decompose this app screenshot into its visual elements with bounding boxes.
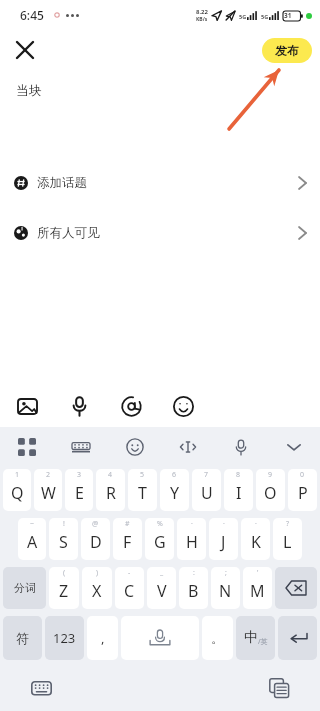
staticText: 5G — [261, 13, 269, 20]
staticText: R — [106, 482, 116, 504]
staticText: : — [193, 568, 195, 578]
staticText: T — [138, 482, 147, 504]
staticText: 8 — [236, 470, 241, 480]
button[interactable]: 添加话题 — [0, 171, 320, 195]
button[interactable]: 4 — [96, 469, 125, 511]
button[interactable]: Backspace — [275, 567, 317, 609]
staticText: 0 — [300, 470, 305, 480]
staticText: X — [92, 580, 102, 602]
button[interactable]: Hide keyboard — [267, 427, 320, 467]
button[interactable]: ’ — [243, 567, 272, 609]
button[interactable]: Close — [8, 33, 42, 67]
staticText: ! — [63, 519, 65, 529]
staticText: · — [191, 519, 193, 529]
button[interactable]: Emoji — [108, 427, 161, 467]
staticText: U — [201, 482, 213, 504]
button[interactable]: ! — [49, 518, 78, 560]
staticText: ’ — [257, 568, 259, 578]
button[interactable]: 8 — [224, 469, 253, 511]
staticText: 当块 — [16, 82, 42, 98]
staticText: · — [223, 519, 225, 529]
staticText: KB/s — [196, 16, 208, 23]
button[interactable]: ( — [49, 567, 79, 609]
button[interactable]: · — [209, 518, 238, 560]
staticText: M — [250, 580, 265, 602]
staticText: 5G — [239, 13, 247, 20]
button[interactable]: Voice — [62, 389, 96, 423]
staticText: H — [186, 531, 198, 553]
staticText: /英 — [258, 637, 268, 647]
button[interactable]: Add image — [10, 389, 44, 423]
staticText: 分词 — [14, 581, 36, 595]
button[interactable]: 。 — [202, 616, 233, 660]
button[interactable]: 2 — [34, 469, 62, 511]
button[interactable]: Text edit — [161, 427, 214, 467]
button[interactable]: 符 — [3, 616, 42, 660]
button[interactable]: 0 — [288, 469, 317, 511]
button[interactable]: 7 — [192, 469, 221, 511]
button[interactable]: 3 — [65, 469, 93, 511]
button[interactable]: 分词 — [3, 567, 46, 609]
button[interactable]: ~ — [18, 518, 46, 560]
staticText: 。 — [211, 630, 224, 646]
staticText: F — [123, 531, 132, 553]
button[interactable]: # — [113, 518, 142, 560]
staticText: 6 — [172, 470, 177, 480]
button[interactable]: - — [115, 567, 144, 609]
staticText: 7 — [204, 470, 209, 480]
staticText: 6:45 — [20, 7, 44, 23]
button[interactable]: @ — [81, 518, 110, 560]
button[interactable]: 所有人可见 — [0, 221, 320, 245]
button[interactable]: ; — [211, 567, 240, 609]
staticText: 2 — [46, 470, 51, 480]
staticText: 中 — [244, 629, 258, 647]
staticText: _ — [160, 568, 164, 578]
button[interactable]: Space — [121, 616, 199, 660]
button[interactable]: Enter — [278, 616, 317, 660]
button[interactable]: Clipboard — [264, 673, 294, 703]
staticText: L — [283, 531, 292, 553]
staticText: ; — [225, 568, 227, 578]
staticText: 9 — [268, 470, 273, 480]
button[interactable]: % — [145, 518, 174, 560]
button[interactable]: 123 — [45, 616, 84, 660]
staticText: 添加话题 — [37, 175, 87, 191]
staticText: N — [219, 580, 232, 602]
button[interactable]: ? — [273, 518, 302, 560]
staticText: P — [298, 482, 308, 504]
button[interactable]: Voice input — [214, 427, 267, 467]
button[interactable]: : — [179, 567, 208, 609]
staticText: 所有人可见 — [37, 225, 100, 241]
staticText: J — [221, 531, 226, 553]
staticText: S — [59, 531, 68, 553]
button[interactable]: · — [177, 518, 206, 560]
staticText: I — [236, 482, 242, 504]
staticText: D — [90, 531, 102, 553]
button[interactable]: 9 — [256, 469, 285, 511]
button[interactable]: 1 — [3, 469, 31, 511]
button[interactable]: Keyboard — [26, 673, 56, 703]
staticText: V — [157, 580, 167, 602]
button[interactable]: Mention — [114, 389, 148, 423]
button[interactable]: Apps — [0, 427, 54, 467]
staticText: E — [75, 482, 84, 504]
staticText: , — [101, 629, 105, 647]
staticText: 123 — [53, 629, 76, 647]
staticText: 31 — [284, 11, 292, 20]
button[interactable]: Keyboard layout — [54, 427, 108, 467]
button[interactable]: _ — [147, 567, 176, 609]
staticText: G — [154, 531, 166, 553]
staticText: 3 — [77, 470, 82, 480]
button[interactable]: 6 — [160, 469, 189, 511]
button[interactable]: 发布 — [262, 38, 312, 63]
staticText: ) — [96, 568, 99, 578]
button[interactable]: ) — [82, 567, 112, 609]
staticText: K — [251, 531, 261, 553]
button[interactable]: , — [87, 616, 118, 660]
button[interactable]: 5 — [128, 469, 157, 511]
staticText: Y — [170, 482, 180, 504]
button[interactable]: Emoji — [166, 389, 200, 423]
staticText: 发布 — [275, 43, 299, 58]
button[interactable]: 中 — [236, 616, 275, 660]
button[interactable]: · — [241, 518, 270, 560]
